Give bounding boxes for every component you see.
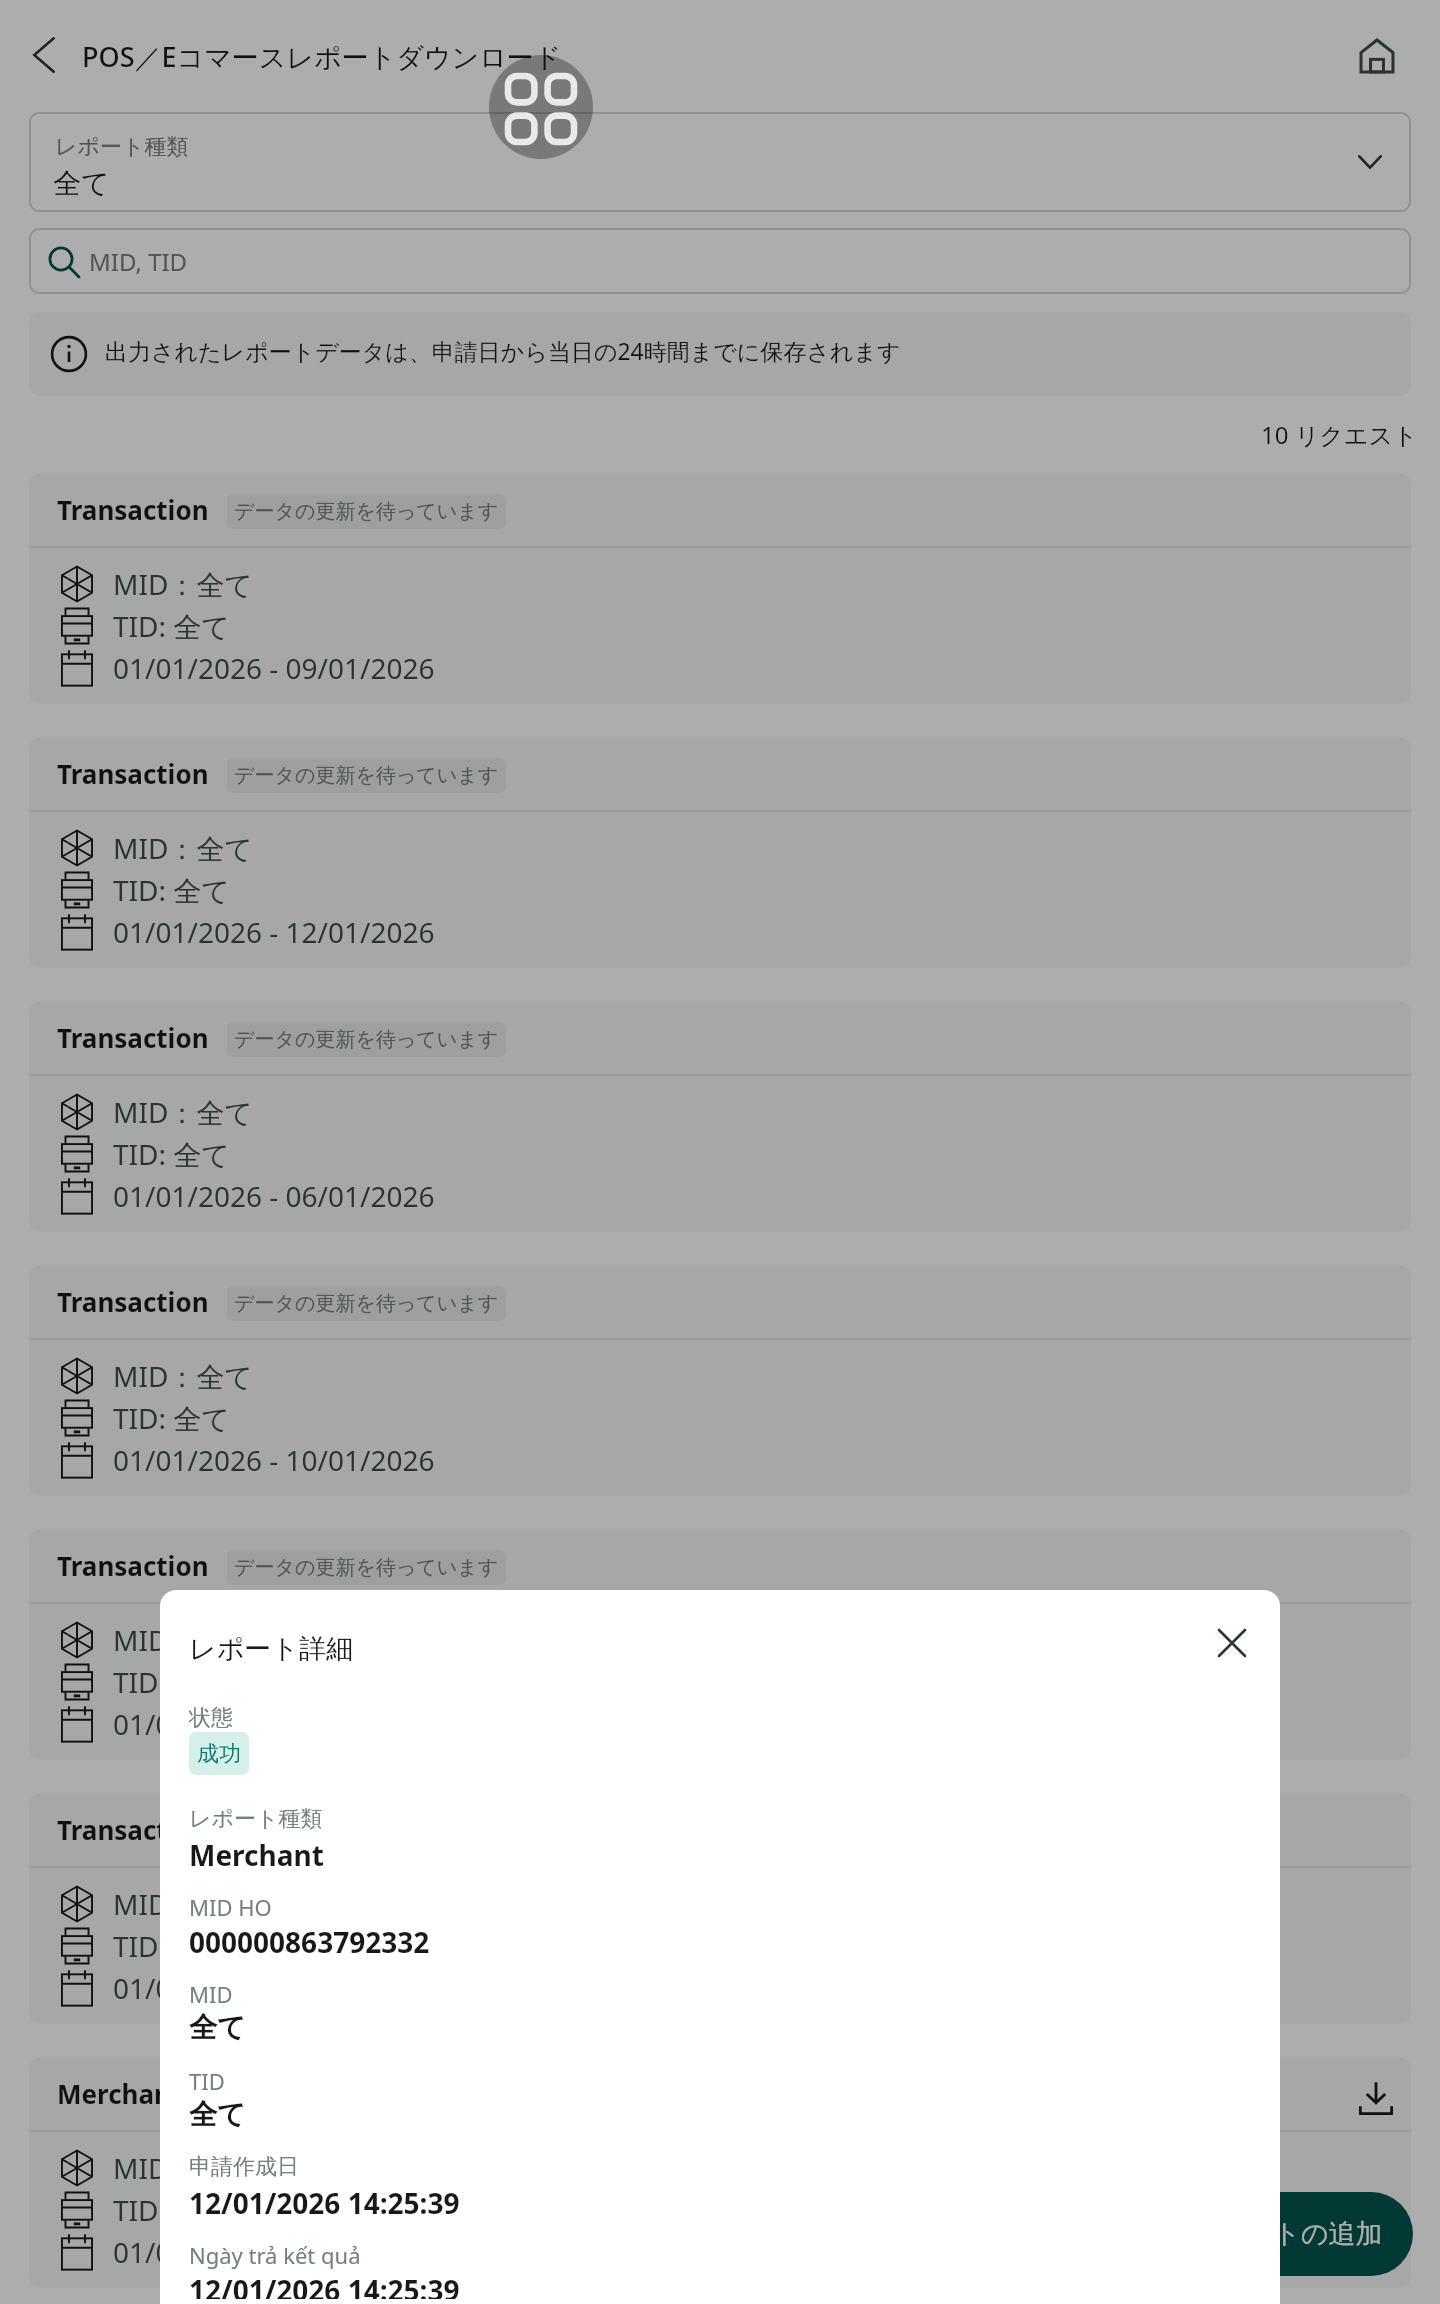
staticText: レポート詳細: [189, 1632, 353, 1666]
staticText: TID: 全て: [113, 1663, 230, 1701]
staticText: MID：全て: [113, 565, 253, 603]
button[interactable]: Home: [1349, 28, 1405, 84]
staticText: 全て: [189, 2010, 246, 2045]
staticText: 01/01/2026 - 12/01/2026: [113, 913, 435, 951]
staticText: 12/01/2026 14:25:39: [189, 2271, 460, 2299]
staticText: TID: 全て: [113, 2191, 230, 2229]
staticText: 全て: [189, 2097, 246, 2132]
staticText: データの更新を待っています: [234, 1027, 499, 1052]
button[interactable]: レポートの追加: [1161, 2192, 1413, 2276]
staticText: MID：全て: [113, 1357, 253, 1395]
staticText: データの更新を待っています: [234, 1819, 499, 1844]
staticText: レポートの追加: [1191, 2217, 1383, 2251]
button[interactable]: Close: [1204, 1624, 1254, 1674]
staticText: Transaction: [57, 1548, 209, 1583]
button[interactable]: Back: [16, 27, 72, 83]
staticText: MID HO: [189, 1892, 272, 1922]
staticText: レポート種類: [189, 1805, 323, 1833]
staticText: 01/01/2026 - 11/01/2026: [113, 1705, 435, 1743]
staticText: Transaction: [57, 1284, 209, 1319]
staticText: Transaction: [57, 756, 209, 791]
staticText: 出力されたレポートデータは、申請日から当日の24時間までに保存されます: [105, 335, 901, 366]
staticText: MID：全て: [113, 829, 253, 867]
staticText: データの更新を待っています: [234, 1291, 499, 1316]
staticText: TID: 全て: [113, 1135, 230, 1173]
staticText: 全て: [53, 166, 110, 201]
button[interactable]: MID, TID: [29, 228, 1411, 294]
staticText: MID：全て: [113, 2149, 253, 2187]
staticText: TID: 全て: [113, 1399, 230, 1437]
button[interactable]: Transaction: [29, 1529, 1411, 1760]
staticText: Transaction: [57, 492, 209, 527]
staticText: レポート種類: [55, 133, 189, 161]
staticText: 12/01/2026 14:25:39: [189, 2184, 460, 2222]
staticText: Transaction: [57, 1020, 209, 1055]
staticText: 01/01/2026 - 07/01/2026: [113, 2233, 435, 2271]
staticText: 000000863792332: [189, 1923, 430, 1961]
staticText: MID：全て: [113, 1093, 253, 1131]
staticText: TID: 全て: [113, 607, 230, 645]
staticText: MID：全て: [113, 1621, 253, 1659]
staticText: MID, TID: [89, 245, 188, 278]
staticText: 01/01/2026 - 08/01/2026: [113, 1969, 435, 2007]
staticText: データの更新を待っています: [234, 763, 499, 788]
button[interactable]: Transaction: [29, 1001, 1411, 1232]
button[interactable]: Download: [1352, 2074, 1400, 2122]
staticText: 申請作成日: [189, 2153, 299, 2181]
staticText: データの更新を待っています: [234, 499, 499, 524]
staticText: MID：全て: [113, 1885, 253, 1923]
staticText: POS／Eコマースレポートダウンロード: [82, 38, 562, 75]
staticText: データの更新を待っています: [234, 1555, 499, 1580]
staticText: 状態: [189, 1704, 233, 1732]
staticText: Merchant: [189, 1836, 324, 1874]
staticText: 10 リクエスト: [1261, 418, 1418, 451]
button[interactable]: レポート種類: [29, 112, 1411, 212]
button[interactable]: Accessibility menu: [489, 55, 593, 159]
button[interactable]: Transaction: [29, 737, 1411, 968]
button[interactable]: Merchant: [29, 2057, 1411, 2288]
staticText: TID: 全て: [113, 1927, 230, 1965]
staticText: Merchant: [57, 2076, 183, 2111]
button[interactable]: Transaction: [29, 1793, 1411, 2024]
staticText: 01/01/2026 - 09/01/2026: [113, 649, 435, 687]
staticText: MID: [189, 1979, 233, 2009]
staticText: 成功: [197, 1740, 241, 1768]
staticText: Transaction: [57, 1812, 209, 1847]
button[interactable]: Transaction: [29, 1265, 1411, 1496]
staticText: TID: 全て: [113, 871, 230, 909]
staticText: Ngày trả kết quả: [189, 2240, 361, 2270]
staticText: 01/01/2026 - 10/01/2026: [113, 1441, 435, 1479]
staticText: TID: [189, 2066, 225, 2096]
button[interactable]: Transaction: [29, 473, 1411, 704]
staticText: 01/01/2026 - 06/01/2026: [113, 1177, 435, 1215]
